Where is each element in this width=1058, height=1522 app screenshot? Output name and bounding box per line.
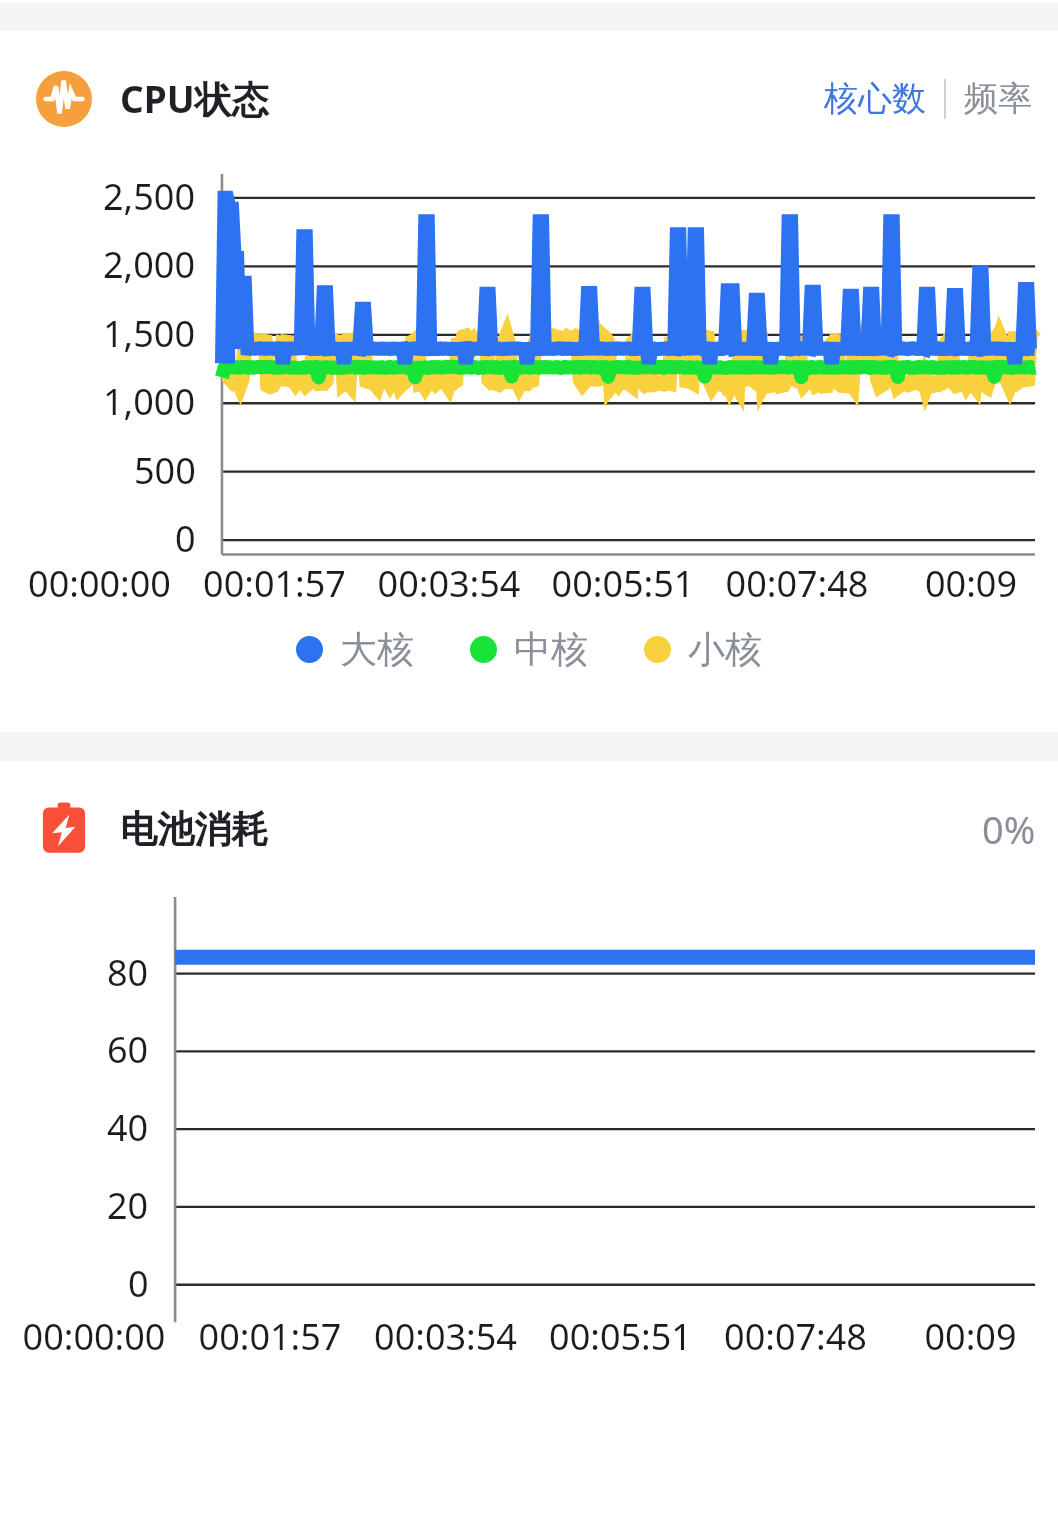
staticText: 1,000 [103,377,196,426]
staticText: 频率 [964,77,1032,120]
staticText: 00:07:48 [710,559,884,608]
staticText: 00:03:54 [358,1312,533,1361]
button[interactable]: 中核 [464,620,594,679]
staticText: 00:00:00 [12,559,187,608]
button[interactable]: 核心数 [818,69,932,128]
staticText: 0% [982,803,1036,855]
staticText: 00:05:51 [533,1312,708,1361]
other: Battery drain [36,801,92,857]
staticText: 2,000 [103,240,196,289]
staticText: 0 [175,514,196,563]
staticText: CPU状态 [120,73,269,124]
staticText: 00:01:57 [187,559,362,608]
staticText: 00:09 [884,559,1058,608]
staticText: 00:09 [883,1312,1058,1361]
staticText: 中核 [514,626,588,673]
staticText: 核心数 [824,77,926,120]
staticText: 80 [107,948,149,997]
staticText: 2,500 [103,172,196,221]
staticText: 00:00:00 [6,1312,182,1361]
staticText: 1,500 [103,309,196,358]
staticText: 电池消耗 [120,806,268,853]
staticText: 00:01:57 [182,1312,358,1361]
button[interactable]: 小核 [638,620,768,679]
staticText: 小核 [688,626,762,673]
staticText: 60 [107,1025,149,1074]
other: CPU status [36,71,92,127]
staticText: 0 [128,1259,149,1308]
staticText: 20 [107,1181,149,1230]
staticText: 00:07:48 [708,1312,883,1361]
staticText: 00:05:51 [536,559,710,608]
staticText: 大核 [340,626,414,673]
staticText: 40 [107,1103,149,1152]
staticText: 500 [134,446,196,495]
button[interactable]: 大核 [290,620,420,679]
staticText: 00:03:54 [362,559,536,608]
button[interactable]: 频率 [958,69,1038,128]
